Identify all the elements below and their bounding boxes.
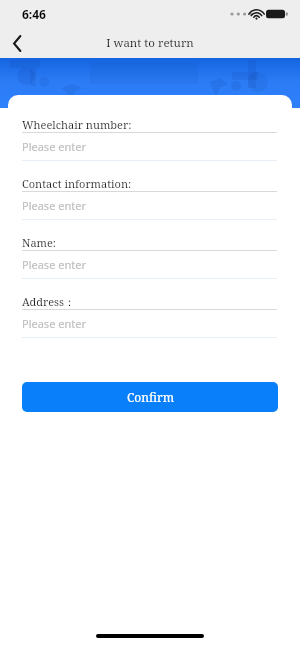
staticText: I want to return xyxy=(106,35,194,51)
staticText: Please enter xyxy=(22,316,86,331)
button[interactable]: Address： xyxy=(22,294,277,353)
button[interactable]: Wheelchair number: xyxy=(22,117,277,176)
button[interactable]: Back xyxy=(0,28,34,58)
staticText: Confirm xyxy=(127,389,174,405)
button[interactable]: Name: xyxy=(22,235,277,294)
staticText: Name: xyxy=(22,235,57,250)
button[interactable]: Confirm xyxy=(22,382,278,412)
staticText: Contact information: xyxy=(22,176,132,191)
staticText: Address： xyxy=(22,294,76,309)
staticText: Please enter xyxy=(22,257,86,272)
staticText: Please enter xyxy=(22,198,86,213)
staticText: Wheelchair number: xyxy=(22,117,132,132)
button[interactable]: Contact information: xyxy=(22,176,277,235)
staticText: Please enter xyxy=(22,139,86,154)
staticText: 6:46 xyxy=(22,6,46,22)
